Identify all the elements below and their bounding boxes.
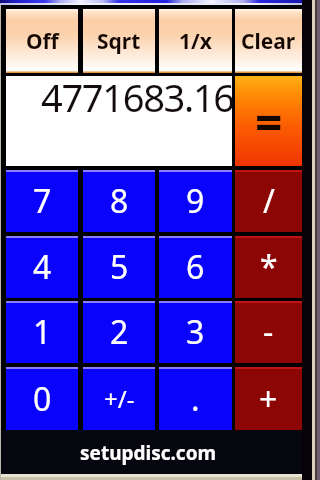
staticText: 3 [186, 310, 205, 354]
button[interactable]: 4 [6, 236, 78, 298]
staticText: 4771683.16 [41, 71, 234, 123]
staticText: 1 [33, 310, 52, 354]
staticText: Off [26, 27, 59, 56]
button[interactable]: 8 [83, 170, 155, 232]
button[interactable]: . [159, 367, 232, 430]
staticText: +/- [104, 382, 135, 415]
button[interactable]: 0 [6, 367, 78, 430]
staticText: Sqrt [97, 27, 141, 56]
staticText: / [263, 179, 275, 223]
button[interactable]: Sqrt [83, 9, 155, 73]
button[interactable]: 3 [159, 301, 232, 363]
button[interactable]: 5 [83, 236, 155, 298]
button[interactable]: / [235, 170, 302, 232]
button[interactable]: - [235, 301, 302, 363]
staticText: 1/x [179, 27, 212, 56]
staticText: = [255, 89, 283, 154]
staticText: * [260, 245, 278, 289]
button[interactable]: + [235, 367, 302, 430]
button[interactable]: 6 [159, 236, 232, 298]
staticText: 6 [186, 245, 205, 289]
button[interactable]: 2 [83, 301, 155, 363]
staticText: 4 [33, 245, 52, 289]
button[interactable]: 1/x [159, 9, 232, 73]
button[interactable]: * [235, 236, 302, 298]
staticText: 5 [110, 245, 129, 289]
staticText: 0 [33, 377, 52, 421]
staticText: + [259, 377, 278, 421]
button[interactable]: Clear [235, 9, 302, 73]
button[interactable]: 9 [159, 170, 232, 232]
button[interactable]: = [235, 76, 302, 166]
staticText: Clear [241, 27, 296, 56]
staticText: 7 [33, 179, 52, 223]
staticText: - [263, 310, 274, 354]
staticText: 9 [186, 179, 205, 223]
button[interactable]: Off [6, 9, 78, 73]
button[interactable]: +/- [83, 367, 155, 430]
staticText: . [191, 377, 200, 421]
button[interactable]: 1 [6, 301, 78, 363]
button[interactable]: Display 4771683.16 [6, 76, 232, 166]
staticText: 2 [110, 310, 129, 354]
staticText: setupdisc.com [80, 440, 217, 466]
staticText: 8 [110, 179, 129, 223]
button[interactable]: 7 [6, 170, 78, 232]
